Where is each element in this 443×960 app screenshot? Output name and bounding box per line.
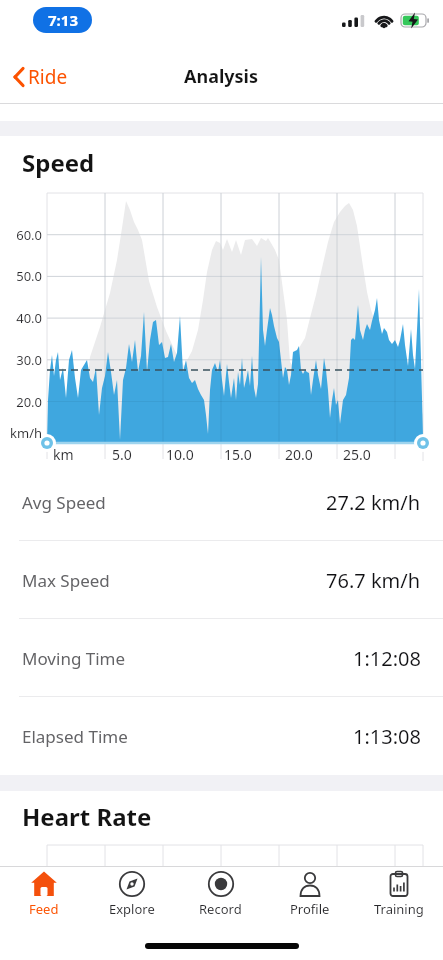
staticText: km — [53, 445, 74, 464]
staticText: 27.2 km/h — [326, 489, 421, 516]
staticText: km/h — [10, 424, 42, 442]
button[interactable]: Profile — [265, 867, 354, 960]
staticText: 40.0 — [16, 309, 42, 327]
staticText: Avg Speed — [22, 491, 106, 514]
staticText: Training — [374, 900, 424, 918]
staticText: Ride — [28, 64, 68, 90]
button[interactable]: Feed — [0, 867, 88, 960]
staticText: 30.0 — [16, 351, 42, 369]
button[interactable]: Training — [354, 867, 443, 960]
staticText: 15.0 — [224, 445, 252, 464]
button[interactable]: Avg Speed — [0, 463, 443, 541]
staticText: Speed — [22, 146, 95, 179]
staticText: Moving Time — [22, 647, 126, 670]
staticText: Explore — [109, 900, 155, 918]
staticText: 5.0 — [112, 445, 132, 464]
staticText: Analysis — [184, 64, 259, 89]
button[interactable]: Max Speed — [0, 541, 443, 619]
staticText: 1:12:08 — [353, 645, 421, 672]
staticText: Profile — [290, 900, 330, 918]
button[interactable]: Moving Time — [0, 619, 443, 697]
button[interactable]: Explore — [88, 867, 176, 960]
staticText: 76.7 km/h — [326, 567, 421, 594]
staticText: 25.0 — [343, 445, 371, 464]
staticText: 10.0 — [166, 445, 194, 464]
staticText: Heart Rate — [22, 800, 152, 833]
staticText: Record — [199, 900, 242, 918]
staticText: 20.0 — [16, 393, 42, 411]
staticText: Max Speed — [22, 569, 110, 592]
staticText: Elapsed Time — [22, 725, 128, 748]
staticText: 7:13 — [48, 10, 78, 30]
staticText: Feed — [29, 900, 59, 918]
staticText: 1:13:08 — [353, 723, 421, 750]
button[interactable]: Ride — [8, 60, 72, 94]
staticText: 50.0 — [16, 267, 42, 285]
staticText: 20.0 — [285, 445, 313, 464]
staticText: 60.0 — [16, 226, 42, 244]
button[interactable]: Elapsed Time — [0, 697, 443, 775]
button[interactable]: Record — [176, 867, 265, 960]
